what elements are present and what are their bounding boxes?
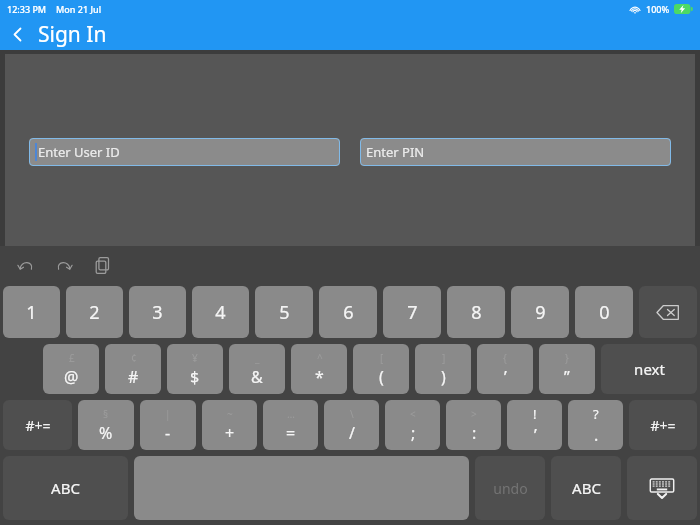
button[interactable]: ! [507, 400, 562, 450]
staticText: < [410, 407, 416, 421]
staticText: # [128, 366, 139, 388]
button[interactable]: § [78, 400, 134, 450]
staticText: #+= [25, 416, 51, 435]
staticText: ( [379, 366, 384, 388]
staticText: Enter PIN [366, 143, 425, 161]
staticText: ’ [504, 366, 507, 388]
button[interactable]: undo [475, 456, 545, 520]
staticText: . [594, 424, 599, 446]
staticText: { [503, 351, 507, 365]
button[interactable]: 5 [255, 286, 313, 338]
staticText: ~ [227, 407, 233, 421]
button[interactable]: next [601, 344, 697, 394]
staticText: 12:33 PM [7, 3, 47, 15]
staticText: ! [533, 405, 537, 423]
button[interactable]: > [446, 400, 501, 450]
staticText: } [565, 351, 569, 365]
staticText: [ [380, 351, 384, 365]
button[interactable]: ABC [3, 456, 128, 520]
button[interactable]: [ [353, 344, 409, 394]
button[interactable]: Redo [49, 250, 79, 280]
button[interactable]: _ [229, 344, 285, 394]
button[interactable]: £ [43, 344, 99, 394]
staticText: § [103, 407, 109, 421]
button[interactable]: } [539, 344, 595, 394]
staticText: 0 [599, 300, 610, 325]
staticText: ’ [534, 424, 537, 446]
staticText: Enter User ID [38, 143, 120, 161]
staticText: \ [350, 407, 354, 421]
staticText: ; [411, 422, 416, 444]
staticText: & [251, 366, 263, 388]
staticText: ¥ [192, 351, 198, 365]
button[interactable]: | [140, 400, 196, 450]
staticText: ¢ [131, 351, 137, 365]
staticText: 7 [407, 300, 418, 325]
staticText: : [472, 422, 477, 444]
staticText: ABC [572, 478, 601, 498]
staticText: ABC [51, 478, 80, 498]
button[interactable]: 2 [66, 286, 123, 338]
staticText: % [99, 422, 113, 444]
staticText: ) [441, 366, 446, 388]
button[interactable]: 9 [511, 286, 569, 338]
button[interactable]: ¥ [167, 344, 223, 394]
staticText: next [634, 359, 665, 379]
button[interactable]: Enter PIN [360, 138, 671, 166]
staticText: * [315, 366, 324, 388]
button[interactable]: ~ [202, 400, 257, 450]
staticText: ^ [317, 351, 323, 365]
staticText: £ [69, 351, 75, 365]
button[interactable]: #+= [3, 400, 72, 450]
staticText: 4 [215, 300, 226, 325]
staticText: ] [442, 351, 446, 365]
staticText: ? [593, 405, 599, 423]
button[interactable]: ¢ [105, 344, 161, 394]
button[interactable]: 4 [192, 286, 249, 338]
button[interactable]: Paste [87, 250, 117, 280]
staticText: | [165, 407, 171, 421]
staticText: / [349, 422, 355, 444]
button[interactable]: 6 [319, 286, 377, 338]
button[interactable]: #+= [629, 400, 697, 450]
button[interactable]: 0 [575, 286, 633, 338]
staticText: ” [564, 366, 570, 388]
staticText: > [471, 407, 477, 421]
staticText: _ [255, 351, 260, 365]
staticText: 1 [26, 300, 37, 325]
button[interactable]: ] [415, 344, 471, 394]
staticText: 3 [152, 300, 163, 325]
staticText: 6 [343, 300, 354, 325]
button[interactable]: ABC [551, 456, 621, 520]
staticText: - [165, 422, 171, 444]
button[interactable]: \ [324, 400, 379, 450]
button[interactable]: … [263, 400, 318, 450]
button[interactable]: Undo [11, 250, 41, 280]
button[interactable]: 1 [3, 286, 60, 338]
staticText: 5 [279, 300, 290, 325]
button[interactable]: Backspace [639, 286, 697, 338]
staticText: #+= [650, 416, 676, 435]
staticText: 9 [535, 300, 546, 325]
staticText: $ [190, 366, 200, 388]
button[interactable]: 7 [383, 286, 441, 338]
button[interactable]: 3 [129, 286, 186, 338]
staticText: undo [493, 479, 528, 498]
staticText: 2 [89, 300, 100, 325]
button[interactable]: Hide keyboard [627, 456, 697, 520]
staticText: + [225, 422, 235, 444]
staticText: 8 [471, 300, 482, 325]
button[interactable]: Enter User ID [29, 138, 340, 166]
button[interactable]: < [385, 400, 440, 450]
staticText: Sign In [38, 20, 107, 49]
staticText: 100% [646, 3, 670, 15]
button[interactable]: ? [568, 400, 623, 450]
staticText: Mon 21 Jul [56, 3, 102, 15]
button[interactable]: ^ [291, 344, 347, 394]
button[interactable]: { [477, 344, 533, 394]
staticText: @ [64, 366, 79, 388]
button[interactable]: 8 [447, 286, 505, 338]
button[interactable]: Back [0, 18, 34, 50]
